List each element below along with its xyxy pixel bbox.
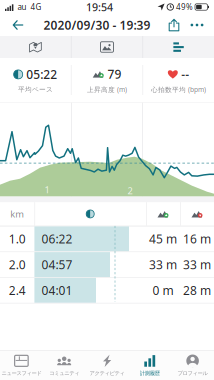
- button[interactable]: Share: [163, 14, 185, 36]
- button[interactable]: Photos: [72, 36, 142, 58]
- staticText: 04:57: [41, 257, 72, 272]
- button[interactable]: 1.0: [0, 226, 214, 251]
- button[interactable]: Back: [5, 14, 31, 36]
- button[interactable]: 2.4: [0, 278, 214, 303]
- staticText: 平均ペース: [18, 85, 53, 94]
- staticText: 2: [127, 184, 132, 197]
- button[interactable]: More options: [185, 14, 209, 36]
- button[interactable]: 2.0: [0, 252, 214, 277]
- button[interactable]: 計測履歴: [128, 350, 171, 380]
- staticText: アクティビティ: [89, 370, 124, 376]
- staticText: 2.4: [9, 282, 26, 298]
- staticText: au: [17, 2, 26, 12]
- staticText: 心拍数平均 (bpm): [151, 85, 206, 94]
- staticText: 04:01: [41, 282, 72, 298]
- staticText: 28 m: [183, 282, 211, 298]
- staticText: 1.0: [9, 231, 26, 247]
- staticText: 16 m: [183, 231, 211, 247]
- staticText: 06:22: [41, 231, 72, 247]
- button[interactable]: プロフィール: [171, 350, 214, 380]
- staticText: 2.0: [9, 257, 26, 272]
- staticText: プロフィール: [178, 370, 208, 376]
- button[interactable]: コミュニティ: [43, 350, 86, 380]
- staticText: コミュニティ: [49, 370, 79, 376]
- staticText: 05:22: [26, 66, 57, 82]
- staticText: 1: [44, 183, 49, 196]
- staticText: 19:54: [86, 0, 113, 14]
- staticText: km: [10, 208, 24, 220]
- button[interactable]: ニュースフィード: [0, 350, 43, 380]
- staticText: 33 m: [149, 257, 177, 272]
- staticText: 0 m: [152, 282, 173, 298]
- staticText: 2020/09/30 - 19:39: [43, 17, 150, 33]
- staticText: --: [181, 66, 189, 82]
- staticText: 45 m: [149, 231, 177, 247]
- staticText: 4G: [30, 2, 41, 12]
- button[interactable]: Map: [0, 36, 71, 58]
- staticText: 計測履歴: [140, 370, 160, 376]
- button[interactable]: アクティビティ: [86, 350, 128, 380]
- button[interactable]: Charts: [143, 36, 214, 58]
- staticText: 上昇高度 (m): [87, 85, 127, 94]
- staticText: 79: [107, 66, 121, 82]
- staticText: 49%: [176, 2, 193, 12]
- staticText: ニュースフィード: [1, 370, 41, 376]
- staticText: 33 m: [183, 257, 211, 272]
